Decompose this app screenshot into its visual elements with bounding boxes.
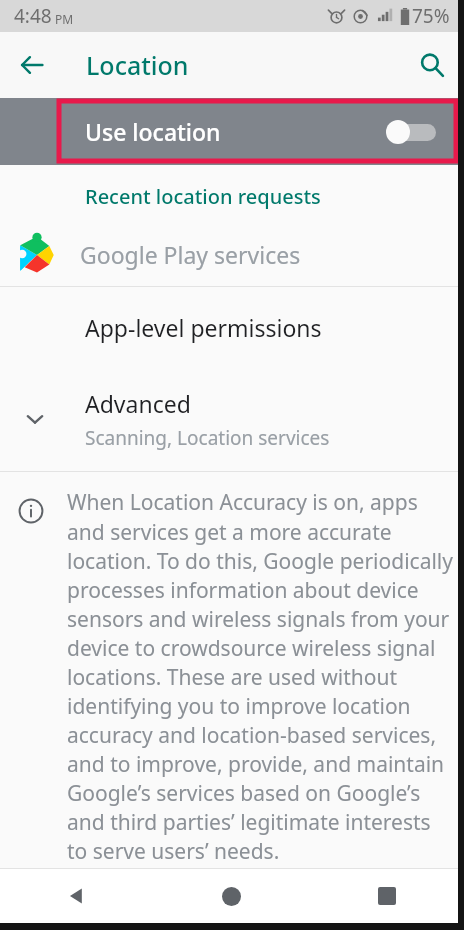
button[interactable]: Back [8, 41, 56, 89]
staticText: Recent location requests [85, 183, 321, 210]
button[interactable]: Back [0, 869, 154, 923]
staticText: PM [55, 11, 74, 27]
staticText: Advanced [85, 388, 191, 419]
staticText: 4:48 [14, 3, 52, 29]
button[interactable]: App-level permissions [0, 287, 464, 367]
staticText: Use location [85, 116, 221, 147]
button[interactable]: Search [408, 41, 456, 89]
staticText: 75% [412, 3, 450, 29]
staticText: Scanning, Location services [85, 425, 330, 451]
staticText: Google Play services [80, 239, 301, 270]
staticText: App-level permissions [85, 312, 322, 343]
button[interactable]: Home [154, 869, 309, 923]
button[interactable]: Google Play services [0, 226, 464, 282]
staticText: When Location Accuracy is on, apps and s… [67, 488, 454, 865]
button[interactable]: Advanced [0, 367, 464, 471]
button[interactable]: Use location [0, 98, 464, 165]
staticText: Location [86, 48, 189, 82]
button[interactable]: Recent apps [309, 869, 464, 923]
